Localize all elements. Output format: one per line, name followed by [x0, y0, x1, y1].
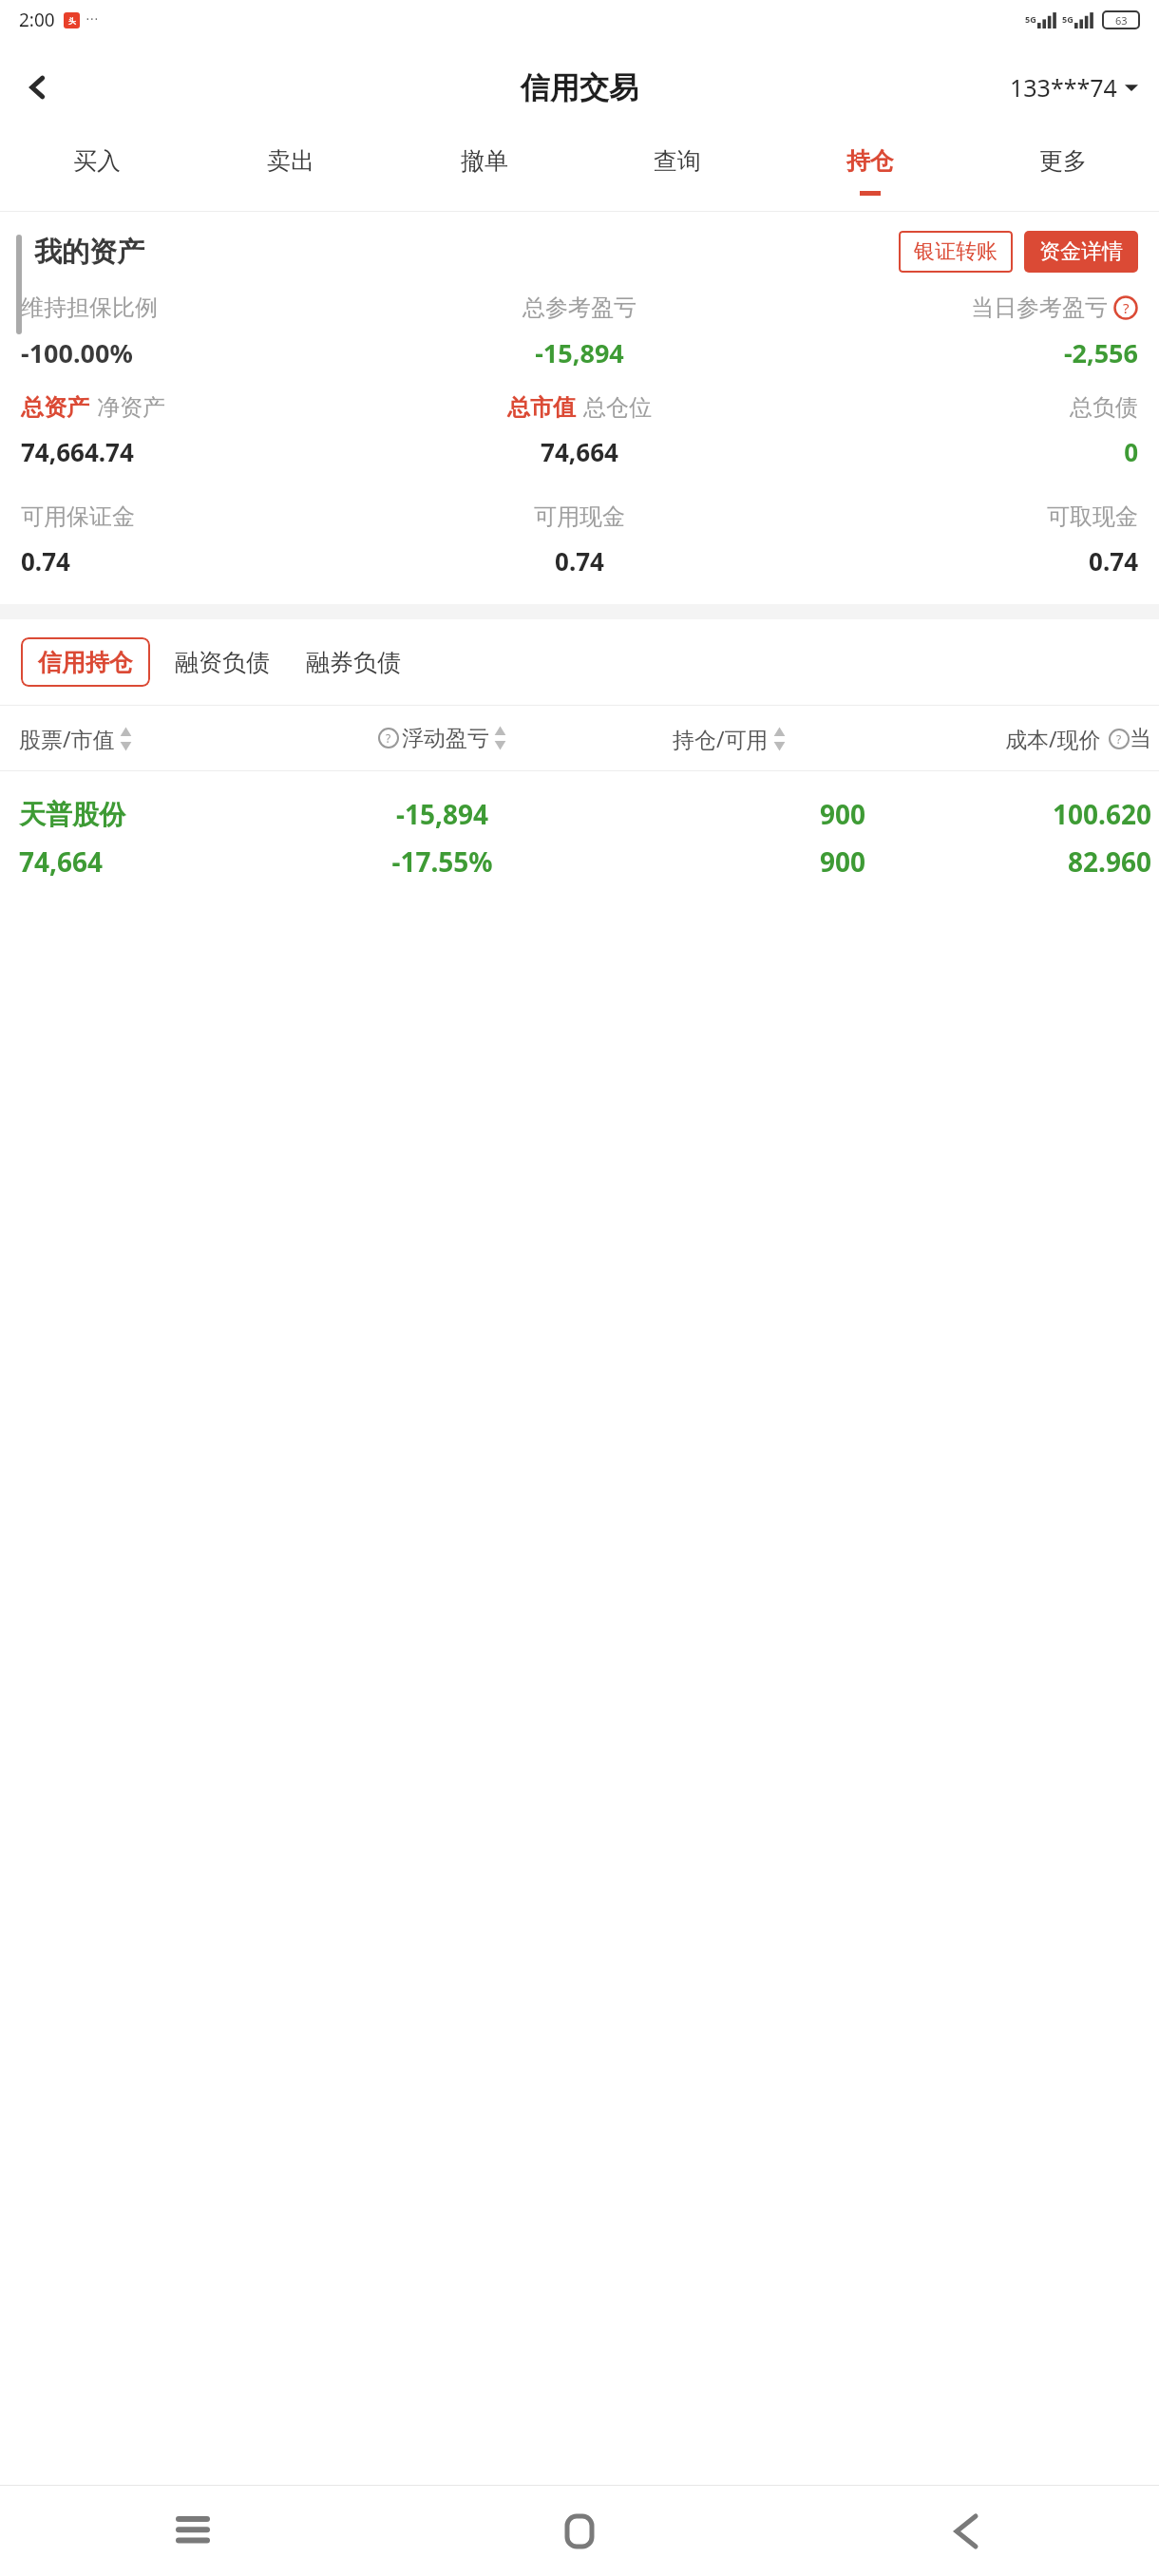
button[interactable]: Help: [1113, 295, 1138, 320]
staticText: 浮动盈亏: [402, 725, 489, 752]
button[interactable]: Back: [772, 2486, 1159, 2576]
button[interactable]: 买入: [0, 135, 194, 211]
button[interactable]: 持仓: [773, 135, 966, 211]
staticText: 63: [1115, 13, 1128, 28]
staticText: 2:00: [19, 8, 55, 32]
staticText: 可用现金: [393, 502, 766, 531]
staticText: 0.74: [21, 544, 393, 578]
staticText: 更多: [1039, 146, 1087, 176]
staticText: 融券负债: [306, 648, 401, 677]
staticText: 0: [766, 435, 1138, 468]
staticText: 信用持仓: [38, 648, 133, 677]
staticText: 133***74: [1010, 71, 1117, 104]
staticText: 融资负债: [175, 648, 270, 677]
staticText: 持仓/可用: [673, 724, 769, 753]
staticText: 总仓位: [583, 393, 652, 422]
staticText: 查询: [654, 146, 701, 176]
staticText: 900: [592, 796, 865, 832]
staticText: 持仓: [846, 146, 894, 176]
button[interactable]: 天普股份: [0, 771, 1159, 902]
staticText: 74,664: [19, 843, 293, 880]
button[interactable]: 融券负债: [294, 638, 412, 687]
staticText: 5G: [1025, 13, 1036, 25]
button[interactable]: 133***74: [1010, 71, 1138, 104]
staticText: 净资产: [97, 393, 165, 422]
staticText: • • •: [86, 15, 98, 25]
button[interactable]: 更多: [966, 135, 1159, 211]
button[interactable]: 信用持仓: [21, 637, 150, 687]
button[interactable]: 查询: [580, 135, 773, 211]
staticText: 卖出: [267, 146, 314, 176]
staticText: 74,664.74: [21, 435, 393, 468]
staticText: 0.74: [393, 544, 766, 578]
staticText: 成本/现价: [1005, 724, 1101, 753]
staticText: -17.55%: [293, 843, 592, 880]
staticText: 82.960: [865, 843, 1151, 880]
staticText: 信用交易: [521, 69, 638, 106]
staticText: 当日参考盈亏: [971, 294, 1108, 322]
staticText: 总资产: [21, 393, 89, 422]
staticText: 资金详情: [1039, 238, 1123, 265]
staticText: 总参考盈亏: [393, 294, 766, 322]
button[interactable]: Recents: [0, 2486, 386, 2576]
staticText: ?: [1116, 731, 1122, 747]
button[interactable]: 卖出: [194, 135, 388, 211]
staticText: 总负债: [1070, 393, 1138, 422]
staticText: -2,556: [766, 335, 1138, 370]
staticText: 买入: [73, 146, 121, 176]
button[interactable]: Back: [9, 59, 66, 116]
staticText: 100.620: [865, 796, 1151, 832]
staticText: 撤单: [461, 146, 508, 176]
button[interactable]: 银证转账: [899, 231, 1013, 273]
staticText: 74,664: [393, 435, 766, 468]
button[interactable]: 撤单: [388, 135, 580, 211]
staticText: 5G: [1062, 13, 1073, 25]
staticText: -100.00%: [21, 335, 393, 370]
staticText: 总市值: [507, 393, 576, 422]
staticText: 0.74: [766, 544, 1138, 578]
staticText: 股票/市值: [19, 724, 115, 753]
staticText: ?: [386, 730, 391, 746]
button[interactable]: 资金详情: [1024, 231, 1138, 273]
staticText: -15,894: [293, 796, 592, 832]
staticText: 我的资产: [34, 235, 144, 270]
staticText: 维持担保比例: [21, 294, 393, 322]
staticText: -15,894: [393, 335, 766, 370]
staticText: 可取现金: [766, 502, 1138, 531]
staticText: 当: [1130, 725, 1151, 752]
staticText: 天普股份: [19, 798, 293, 831]
staticText: 900: [592, 843, 865, 880]
staticText: ?: [1123, 298, 1130, 317]
staticText: 银证转账: [914, 238, 997, 265]
staticText: 可用保证金: [21, 502, 393, 531]
button[interactable]: Home: [386, 2486, 772, 2576]
staticText: 头: [68, 16, 76, 26]
button[interactable]: 融资负债: [150, 638, 294, 687]
